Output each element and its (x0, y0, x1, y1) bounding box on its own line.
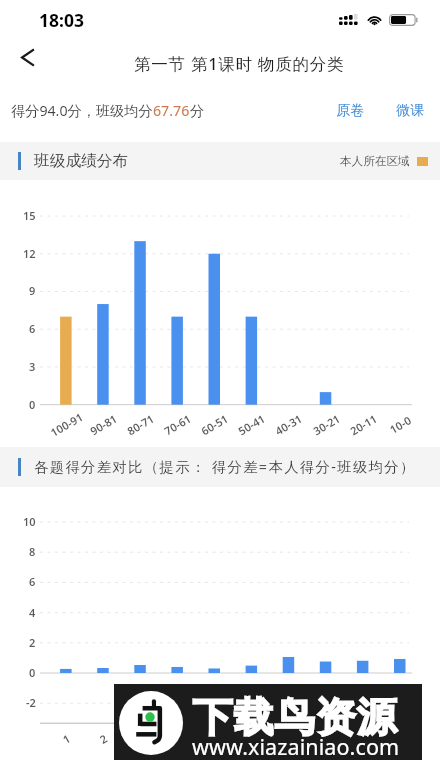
staticText: 9 (29, 283, 36, 298)
staticText: 90-81 (87, 411, 120, 438)
staticText: 20-11 (347, 411, 380, 438)
staticText: 4 (171, 730, 184, 747)
staticText: -2 (26, 695, 36, 710)
staticText: 30-21 (310, 411, 343, 438)
staticText: 0 (29, 397, 36, 412)
staticText: 6 (29, 321, 36, 336)
staticText: 1 (60, 730, 73, 747)
staticText: 6 (245, 730, 258, 747)
staticText: 67.76 (153, 101, 190, 120)
staticText: 各题得分差对比（提示： 得分差=本人得分-班级均分） (34, 457, 416, 477)
staticText: 5 (208, 730, 221, 747)
staticText: 10 (23, 514, 36, 529)
staticText: 3 (134, 730, 147, 747)
staticText: 下载鸟资源 (192, 692, 397, 742)
staticText: 6 (29, 574, 36, 589)
staticText: 9 (357, 730, 370, 747)
staticText: 70-61 (161, 411, 194, 438)
staticText: www.xiazainiao.com (192, 732, 400, 761)
staticText: 0 (29, 665, 36, 680)
staticText: 15 (23, 208, 36, 223)
staticText: 2 (29, 635, 36, 650)
button[interactable]: Back (5, 37, 49, 77)
staticText: 本人所在区域 (340, 154, 410, 169)
staticText: 8 (29, 544, 36, 559)
staticText: 18:03 (39, 8, 84, 32)
staticText: 3 (29, 359, 36, 374)
staticText: 2 (97, 730, 110, 747)
staticText: 60-51 (198, 411, 231, 438)
staticText: 微课 (396, 101, 425, 119)
staticText: 8 (320, 730, 333, 747)
staticText: 第一节 第1课时 物质的分类 (134, 52, 345, 75)
staticText: 得分94.0分，班级均分 (11, 101, 153, 120)
staticText: 10 (391, 729, 410, 748)
staticText: 10-0 (387, 412, 414, 437)
staticText: 原卷 (336, 101, 365, 119)
staticText: 分 (190, 102, 205, 120)
button[interactable]: 原卷 (329, 94, 372, 126)
staticText: 40-31 (272, 411, 305, 438)
staticText: 班级成绩分布 (34, 151, 129, 171)
staticText: 7 (282, 730, 295, 747)
staticText: 50-41 (235, 411, 268, 438)
staticText: 80-71 (124, 411, 157, 438)
staticText: 100-91 (48, 409, 85, 440)
button[interactable]: 微课 (389, 94, 432, 126)
staticText: 12 (23, 246, 36, 261)
staticText: 4 (29, 605, 36, 620)
